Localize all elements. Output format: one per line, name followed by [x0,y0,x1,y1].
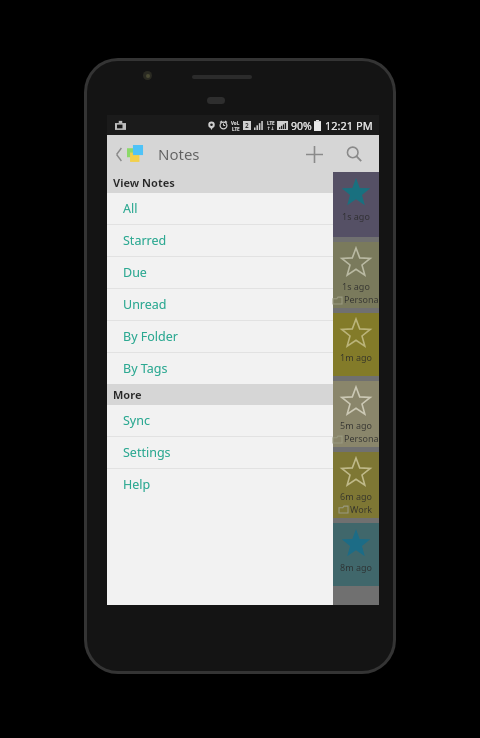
staticText: 5m ago [340,419,372,431]
staticText: Settings [123,444,171,461]
staticText: View Notes [113,175,175,190]
staticText: Help [123,476,151,493]
button[interactable]: Sync [107,405,333,436]
button[interactable]: Due [107,257,333,288]
staticText: Personal [344,293,379,308]
staticText: Sync [123,412,150,429]
staticText: 8m ago [340,561,372,573]
button[interactable]: By Tags [107,353,333,384]
button[interactable]: 6m ago [333,452,379,518]
button[interactable]: Unread [107,289,333,320]
button[interactable]: All [107,193,333,224]
staticText: By Tags [123,360,168,377]
staticText: VoL [231,120,240,126]
staticText: Due [123,264,147,281]
button[interactable]: 8m ago [333,523,379,586]
staticText: More [113,387,142,402]
staticText: Work [350,503,373,515]
button[interactable]: Help [107,469,333,500]
staticText: By Folder [123,328,178,345]
staticText: 12:21 PM [325,118,373,133]
button[interactable]: By Folder [107,321,333,352]
button[interactable]: Settings [107,437,333,468]
staticText: 1s ago [342,280,370,292]
button[interactable]: Starred [107,225,333,256]
button[interactable] [111,141,149,167]
staticText: ↑↓ [267,126,275,131]
staticText: 1m ago [340,351,372,363]
staticText: Unread [123,296,167,313]
staticText: 1s ago [342,210,370,222]
staticText: All [123,200,138,217]
staticText: Personal [344,432,379,447]
button[interactable]: Add note [297,137,331,171]
staticText: 2 [245,121,249,130]
staticText: 6m ago [340,490,372,502]
staticText: 90% [291,119,312,133]
staticText: Starred [123,232,167,249]
button[interactable]: 1s ago [333,242,379,308]
staticText: Notes [158,144,200,164]
button[interactable]: 5m ago [333,381,379,447]
staticText: LTE [267,120,275,126]
button[interactable]: Search [337,137,371,171]
button[interactable]: 1m ago [333,313,379,376]
button[interactable]: 1s ago [333,172,379,237]
staticText: LTE [232,126,240,131]
